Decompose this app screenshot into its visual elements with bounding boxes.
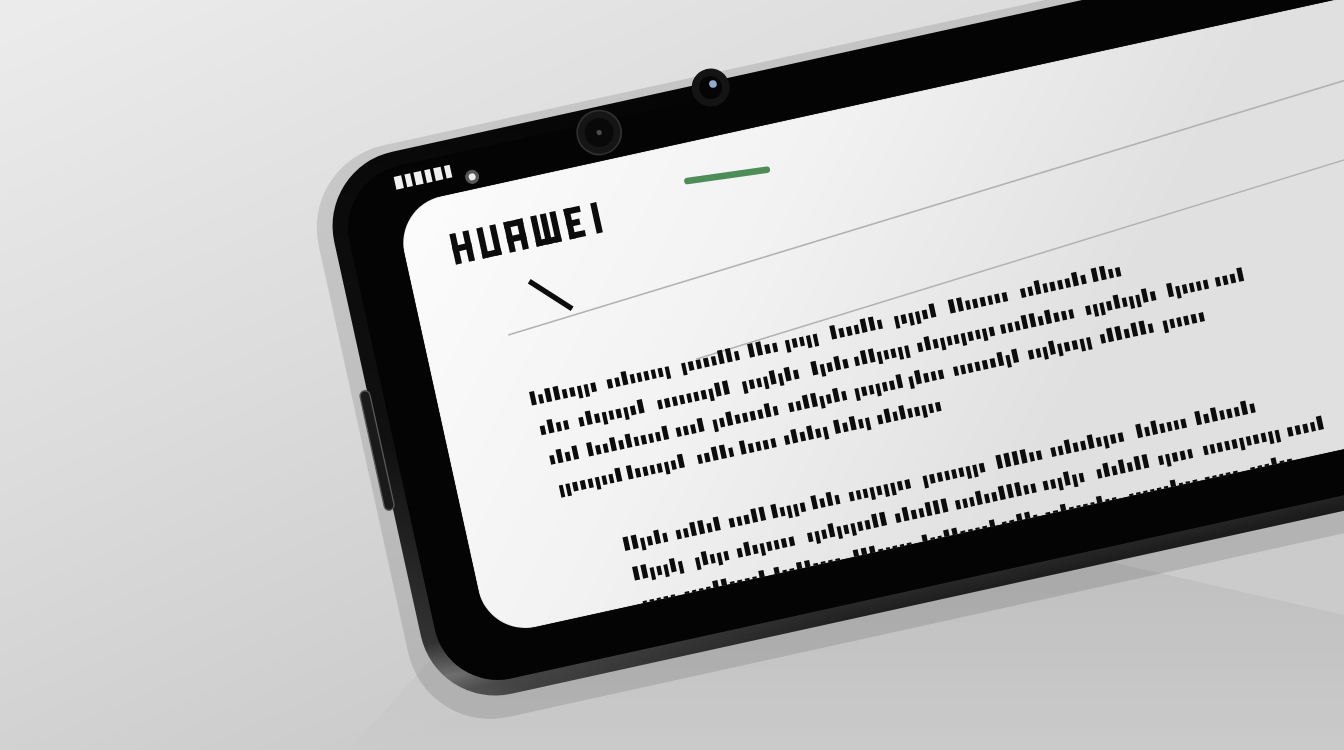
button[interactable]: Phone displaying an article screen	[0, 0, 1344, 750]
